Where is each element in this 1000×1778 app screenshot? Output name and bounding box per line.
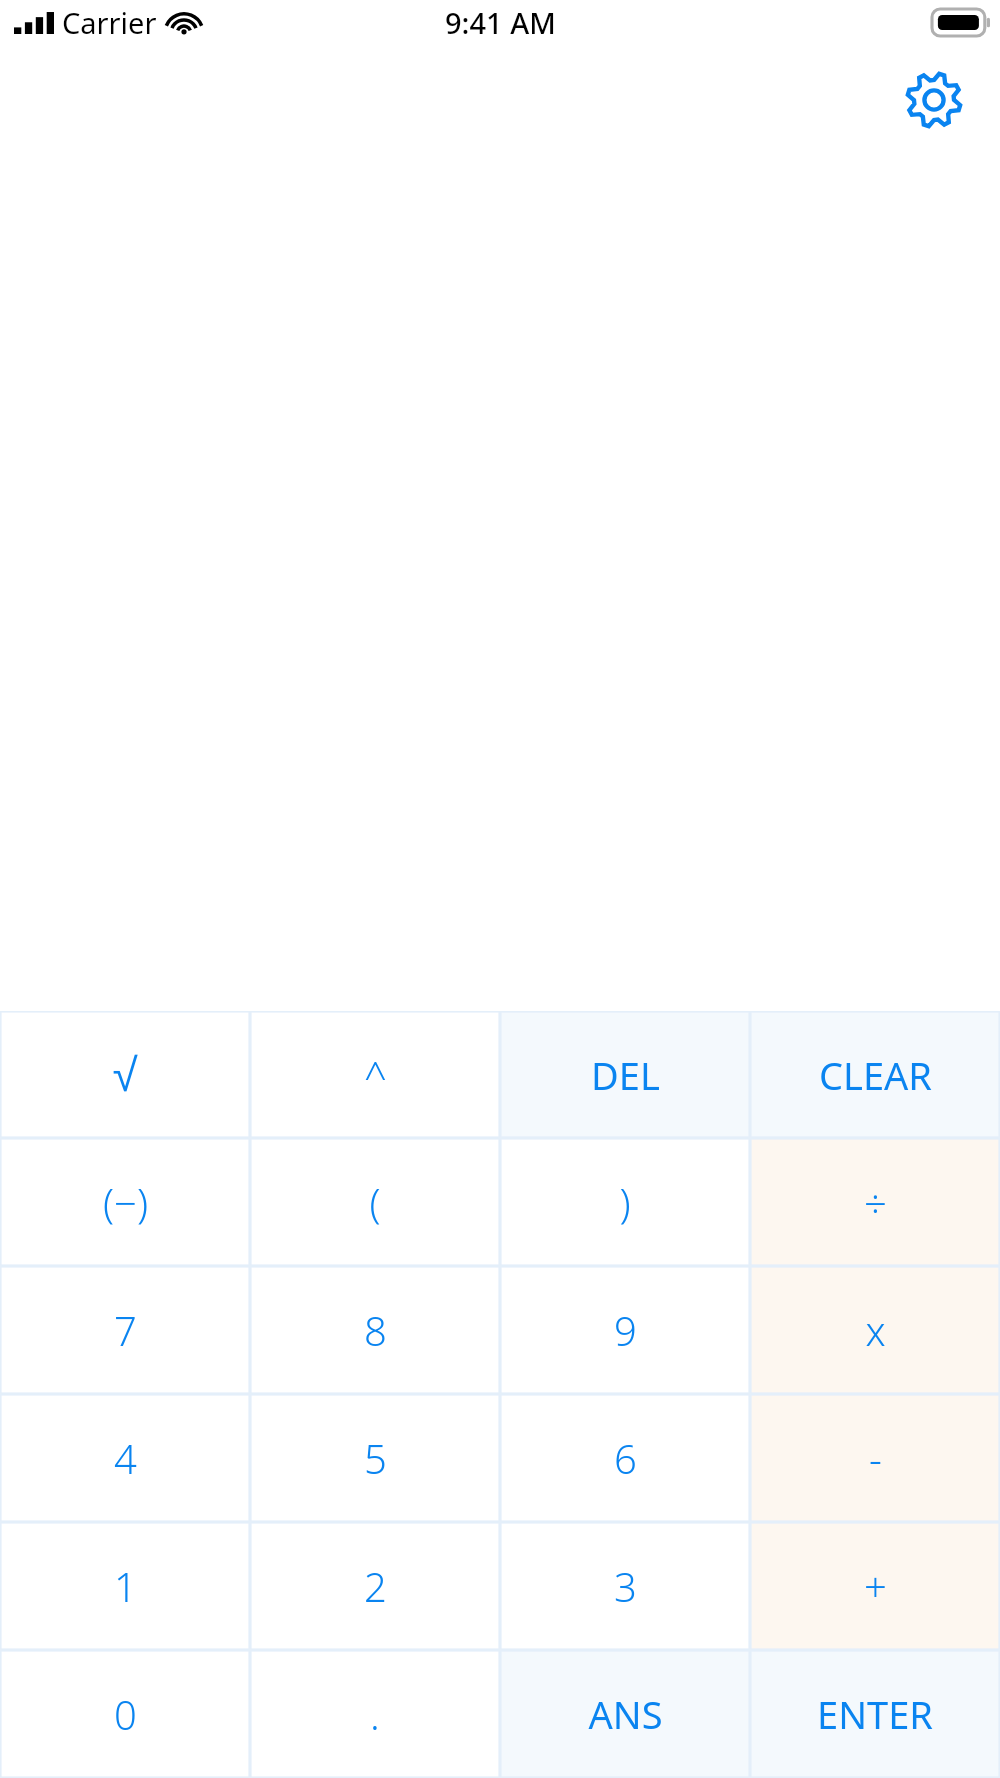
button[interactable]: 6 (500, 1394, 750, 1522)
staticText: - (869, 1431, 882, 1485)
button[interactable]: - (750, 1394, 1000, 1522)
staticText: √ (112, 1049, 138, 1100)
staticText: . (370, 1687, 380, 1741)
button[interactable]: . (250, 1650, 500, 1778)
staticText: 3 (614, 1559, 637, 1613)
staticText: + (864, 1559, 887, 1613)
button[interactable]: (−) (0, 1138, 250, 1266)
staticText: ^ (364, 1048, 387, 1102)
staticText: ANS (588, 1688, 663, 1740)
staticText: Carrier (62, 3, 157, 42)
staticText: 2 (364, 1559, 387, 1613)
button[interactable]: DEL (500, 1011, 750, 1138)
staticText: ( (369, 1175, 381, 1229)
button[interactable]: x (750, 1266, 1000, 1394)
button[interactable]: CLEAR (750, 1011, 1000, 1138)
button[interactable]: √ (0, 1011, 250, 1138)
staticText: (−) (103, 1175, 148, 1229)
button[interactable]: 4 (0, 1394, 250, 1522)
staticText: 5 (364, 1431, 387, 1485)
staticText: 1 (114, 1559, 137, 1613)
button[interactable]: + (750, 1522, 1000, 1650)
button[interactable]: 7 (0, 1266, 250, 1394)
staticText: 7 (114, 1303, 137, 1357)
staticText: 9:41 AM (445, 3, 556, 42)
staticText: x (865, 1303, 886, 1357)
staticText: ) (619, 1175, 631, 1229)
staticText: ÷ (864, 1175, 887, 1229)
button[interactable]: Settings (903, 69, 965, 131)
staticText: 8 (364, 1303, 387, 1357)
staticText: 0 (114, 1687, 137, 1741)
button[interactable]: ANS (500, 1650, 750, 1778)
button[interactable]: 0 (0, 1650, 250, 1778)
button[interactable]: 2 (250, 1522, 500, 1650)
button[interactable]: ENTER (750, 1650, 1000, 1778)
button[interactable]: 8 (250, 1266, 500, 1394)
button[interactable]: ( (250, 1138, 500, 1266)
button[interactable]: ) (500, 1138, 750, 1266)
staticText: 9 (614, 1303, 637, 1357)
button[interactable]: 3 (500, 1522, 750, 1650)
button[interactable]: 5 (250, 1394, 500, 1522)
staticText: DEL (591, 1049, 660, 1101)
button[interactable]: ÷ (750, 1138, 1000, 1266)
staticText: ENTER (817, 1688, 933, 1740)
staticText: CLEAR (819, 1049, 932, 1101)
staticText: 4 (114, 1431, 137, 1485)
button[interactable]: 9 (500, 1266, 750, 1394)
button[interactable]: ^ (250, 1011, 500, 1138)
staticText: 6 (614, 1431, 637, 1485)
button[interactable]: 1 (0, 1522, 250, 1650)
